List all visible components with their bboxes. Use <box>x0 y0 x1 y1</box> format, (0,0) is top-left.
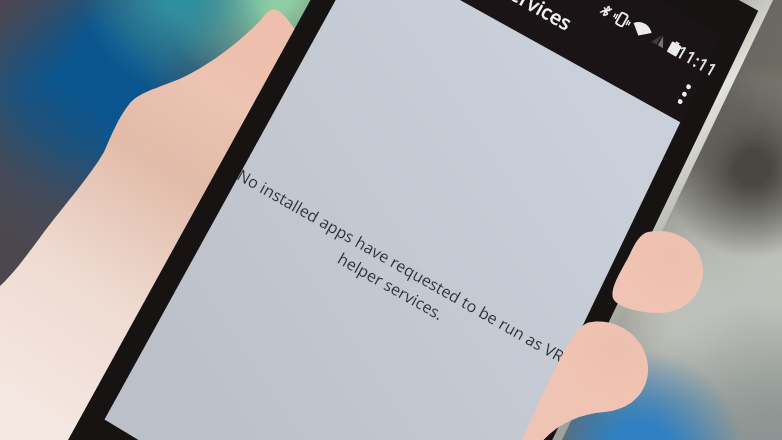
button[interactable]: VR helper services <box>0 0 782 440</box>
